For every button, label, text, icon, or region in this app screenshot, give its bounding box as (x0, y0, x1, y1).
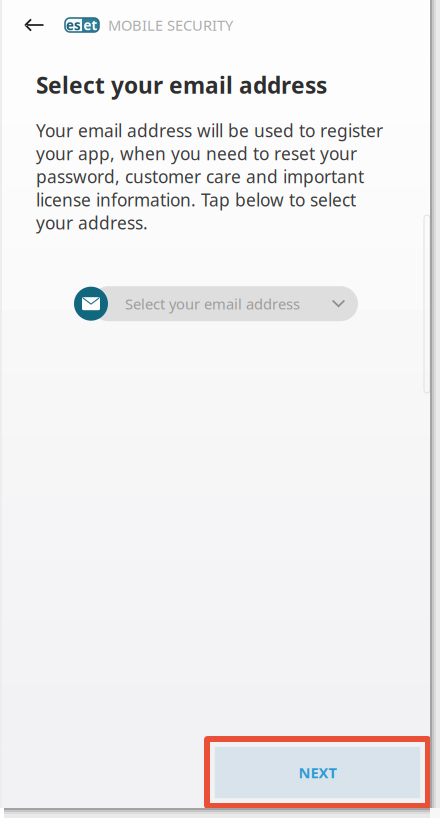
staticText: NEXT (298, 763, 336, 782)
button[interactable]: Select your email address (74, 286, 358, 321)
button[interactable]: Back (2, 0, 65, 50)
staticText: Your email address will be used to regis… (36, 119, 383, 234)
button[interactable]: NEXT (214, 746, 421, 799)
staticText: Select your email address (125, 294, 300, 313)
staticText: Select your email address (36, 70, 327, 100)
staticText: MOBILE SECURITY (108, 15, 233, 35)
staticText: es (66, 16, 81, 34)
staticText: et (83, 16, 97, 34)
